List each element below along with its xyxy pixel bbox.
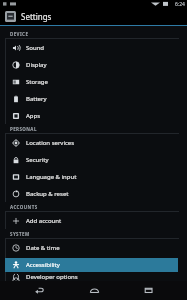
- staticText: Developer options: [26, 273, 78, 281]
- button[interactable]: Date & time: [0, 239, 187, 256]
- button[interactable]: Home: [79, 281, 109, 300]
- staticText: Storage: [26, 78, 48, 86]
- staticText: Display: [26, 61, 47, 69]
- staticText: Date & time: [26, 244, 60, 252]
- staticText: PERSONAL: [10, 126, 37, 132]
- button[interactable]: Security: [0, 151, 187, 168]
- staticText: Backup & reset: [26, 190, 69, 198]
- staticText: Sound: [26, 44, 45, 52]
- staticText: Settings: [21, 11, 52, 22]
- button[interactable]: Storage: [0, 73, 187, 90]
- staticText: Location services: [26, 139, 75, 147]
- staticText: ACCOUNTS: [10, 204, 38, 210]
- button[interactable]: Add account: [0, 212, 187, 229]
- staticText: DEVICE: [10, 31, 29, 37]
- staticText: 6:24: [175, 1, 185, 8]
- button[interactable]: Backup & reset: [0, 185, 187, 202]
- button[interactable]: Settings: [0, 8, 187, 25]
- button[interactable]: Recent apps: [133, 281, 163, 300]
- button[interactable]: Developer options: [0, 273, 187, 281]
- button[interactable]: Accessibility: [0, 256, 187, 273]
- staticText: SYSTEM: [10, 231, 30, 237]
- staticText: Battery: [26, 95, 47, 103]
- button[interactable]: Back: [24, 281, 54, 300]
- staticText: Security: [26, 156, 49, 164]
- button[interactable]: Apps: [0, 107, 187, 124]
- button[interactable]: Battery: [0, 90, 187, 107]
- button[interactable]: Sound: [0, 39, 187, 56]
- button[interactable]: Location services: [0, 134, 187, 151]
- staticText: Accessibility: [26, 261, 60, 269]
- staticText: Apps: [26, 112, 41, 120]
- button[interactable]: Language & input: [0, 168, 187, 185]
- button[interactable]: Display: [0, 56, 187, 73]
- staticText: Language & input: [26, 173, 77, 181]
- staticText: Add account: [26, 217, 62, 225]
